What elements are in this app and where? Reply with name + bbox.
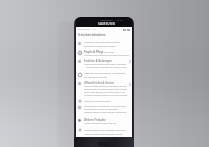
staticText: mehr dazu <box>104 51 115 54</box>
button[interactable] <box>76 71 132 80</box>
staticText: Erstinbetriebnahme <box>78 33 106 37</box>
staticText: Funktion & Nutzungen <box>84 59 113 63</box>
staticText: Grundsätzlich gilt der jeweiligen Stelle… <box>84 129 129 135</box>
staticText: Annahme- und Sendefehler: Nutzerbedarf h… <box>84 72 129 78</box>
staticText: Hinweis zur Inbetriebnahme <box>84 100 111 103</box>
staticText: Modemstatus-Information ist sichtbar. Di… <box>84 105 129 114</box>
button[interactable] <box>76 117 132 126</box>
staticText: Hinweise: bitte beachten Sie unsere Anle… <box>84 54 129 57</box>
staticText: Offizielle Infos & Service <box>84 81 114 85</box>
other: Open <box>129 83 131 86</box>
button[interactable] <box>76 58 132 70</box>
staticText: Weitere Produkte <box>84 118 106 122</box>
staticText: Unsere Produkte entlang Ihrer Geräte <box>84 122 116 125</box>
button[interactable] <box>76 128 132 137</box>
staticText: Technik-Ansprechpartner sind aktuell ans… <box>84 85 129 97</box>
staticText: Vodafone.de 4G <box>78 28 96 31</box>
button[interactable] <box>76 99 132 104</box>
other: Open <box>129 60 131 63</box>
button[interactable] <box>76 40 132 49</box>
staticText: Ungenutzte Features sind vorab zu aktivi… <box>84 63 127 66</box>
button[interactable] <box>76 104 132 116</box>
staticText: Regeln & Pflege <box>84 50 104 54</box>
staticText: SAMSUNG <box>98 22 116 26</box>
staticText: Wartung & Instandhaltung erfordert beson… <box>84 41 129 47</box>
staticText: in der Funktion im Eintrag der Funktion … <box>86 66 127 69</box>
button[interactable] <box>76 49 132 58</box>
button[interactable] <box>76 81 132 98</box>
